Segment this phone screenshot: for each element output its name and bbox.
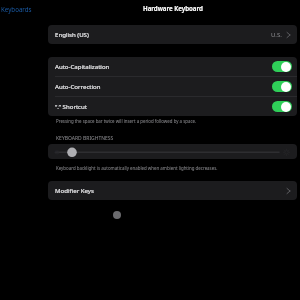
button[interactable]: Auto-Capitalization <box>48 57 297 76</box>
button[interactable]: Drag handle <box>113 211 121 219</box>
staticText: English (US) <box>55 30 89 38</box>
button[interactable]: Auto-Correction <box>48 77 297 96</box>
button[interactable]: Keyboards <box>0 0 44 18</box>
staticText: Auto-Correction <box>55 82 101 90</box>
staticText: Modifier Keys <box>55 186 94 194</box>
staticText: Keyboard backlight is automatically enab… <box>56 165 218 171</box>
button[interactable]: “.” Shortcut <box>48 97 297 116</box>
staticText: “.” Shortcut <box>55 102 87 110</box>
button[interactable]: Toggle on <box>272 101 292 112</box>
staticText: Keyboards <box>1 5 32 13</box>
button[interactable]: Keyboard brightness <box>48 144 297 159</box>
button[interactable]: Toggle on <box>272 61 292 72</box>
button[interactable]: Toggle on <box>272 81 292 92</box>
staticText: Auto-Capitalization <box>55 62 110 70</box>
button[interactable]: English (US) <box>48 25 297 44</box>
staticText: KEYBOARD BRIGHTNESS <box>56 135 114 142</box>
button[interactable]: Modifier Keys <box>48 181 297 200</box>
staticText: U.S. <box>271 30 282 38</box>
staticText: Hardware Keyboard <box>143 4 203 12</box>
staticText: Pressing the space bar twice will insert… <box>56 118 197 124</box>
